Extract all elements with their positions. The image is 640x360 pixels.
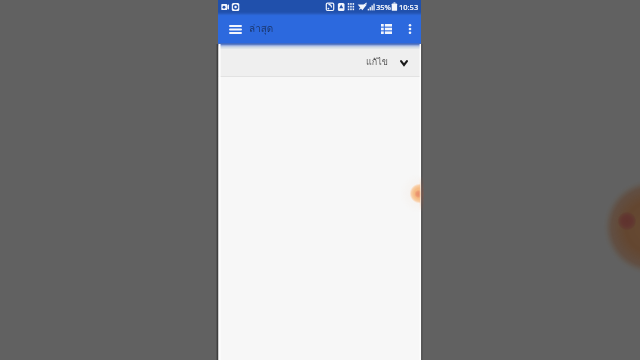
staticText: ล่าสุด — [249, 21, 274, 37]
button[interactable]: แก้ไข — [358, 44, 413, 76]
button[interactable]: More options — [397, 14, 423, 44]
staticText: 35% — [376, 2, 391, 12]
button[interactable]: Open navigation drawer — [221, 14, 249, 44]
staticText: 10:53 — [399, 2, 419, 12]
staticText: แก้ไข — [366, 55, 388, 69]
button[interactable]: ล่าสุด — [249, 14, 364, 44]
button[interactable]: Switch to list view — [372, 14, 400, 44]
